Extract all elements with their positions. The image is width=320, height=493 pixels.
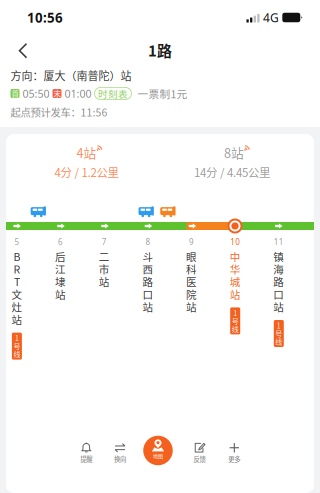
staticText: 05:50 (19, 86, 52, 101)
staticText: 线 (13, 349, 20, 359)
staticText: 首 (11, 88, 18, 99)
staticText: 4分 / 1.2公里 (54, 164, 118, 180)
staticText: 路 (142, 274, 153, 289)
staticText: 一票制1元 (137, 86, 187, 101)
staticText: 号 (13, 341, 20, 351)
staticText: 口 (273, 286, 284, 302)
button[interactable]: 提醒 (70, 437, 102, 467)
button[interactable]: Back (1, 31, 45, 71)
button[interactable]: 9 (176, 237, 206, 407)
staticText: 起点预计发车：11:56 (10, 104, 107, 120)
staticText: 10 (230, 237, 240, 247)
staticText: 5 (14, 237, 19, 247)
button[interactable]: 6 (46, 237, 76, 407)
button[interactable]: 反馈 (184, 437, 216, 467)
staticText: 提醒 (80, 454, 92, 464)
staticText: 口 (142, 286, 153, 302)
staticText: 4站 (76, 143, 96, 162)
staticText: 镇 (273, 249, 284, 264)
button[interactable]: 8 (133, 237, 163, 407)
staticText: 1 (15, 333, 19, 343)
button[interactable]: 7 (89, 237, 119, 407)
staticText: 8站 (224, 143, 244, 162)
staticText: 时刻表 (98, 86, 128, 100)
button[interactable]: 11 (264, 237, 294, 407)
staticText: 城 (230, 274, 241, 289)
button[interactable]: 换向 (104, 437, 136, 467)
staticText: 14分 / 4.45公里 (194, 164, 270, 180)
button[interactable]: 时刻表 (94, 87, 131, 99)
staticText: 7 (102, 237, 107, 247)
staticText: 1路 (148, 39, 172, 61)
staticText: 江 (55, 261, 66, 277)
staticText: 号 (275, 328, 282, 338)
staticText: 号 (232, 316, 239, 326)
staticText: 6 (58, 237, 63, 247)
staticText: 西 (142, 261, 153, 277)
staticText: 换向 (114, 454, 126, 464)
staticText: B (13, 249, 20, 264)
staticText: 4G (263, 9, 279, 25)
staticText: 二 (99, 249, 110, 264)
staticText: 方向：厦大（南普陀）站 (10, 67, 131, 83)
staticText: 科 (186, 261, 197, 277)
staticText: 斗 (142, 249, 153, 264)
button[interactable]: 5 (2, 237, 32, 407)
staticText: 眼 (186, 249, 197, 264)
staticText: 院 (186, 286, 197, 302)
button[interactable]: 更多 (218, 437, 250, 467)
staticText: 站 (11, 312, 22, 327)
staticText: 反馈 (194, 454, 206, 464)
staticText: 灶 (11, 299, 22, 314)
staticText: 站 (142, 299, 153, 314)
staticText: 后 (55, 249, 66, 264)
staticText: T (14, 274, 20, 289)
staticText: 1 (277, 320, 281, 330)
staticText: 8 (145, 237, 150, 247)
staticText: 地图 (153, 452, 163, 459)
staticText: 站 (273, 299, 284, 314)
staticText: 11 (274, 237, 284, 247)
staticText: 9 (189, 237, 194, 247)
staticText: 华 (230, 261, 241, 277)
staticText: 更多 (228, 454, 240, 464)
staticText: 1 (233, 308, 237, 318)
staticText: 站 (99, 274, 110, 289)
staticText: 路 (273, 274, 284, 289)
button[interactable]: 地图 (140, 432, 176, 468)
staticText: 海 (273, 261, 284, 277)
staticText: 末 (53, 88, 60, 99)
staticText: 市 (99, 261, 110, 277)
staticText: 站 (230, 286, 241, 302)
staticText: 01:00 (61, 86, 94, 101)
staticText: 线 (232, 324, 239, 334)
staticText: 医 (186, 274, 197, 289)
staticText: 站 (55, 286, 66, 302)
staticText: R (13, 261, 20, 277)
staticText: 10:56 (27, 9, 63, 26)
staticText: 线 (275, 336, 282, 346)
staticText: 中 (230, 249, 241, 264)
staticText: 文 (11, 286, 22, 302)
staticText: 站 (186, 299, 197, 314)
button[interactable]: 10 (220, 237, 250, 407)
staticText: 埭 (55, 274, 66, 289)
